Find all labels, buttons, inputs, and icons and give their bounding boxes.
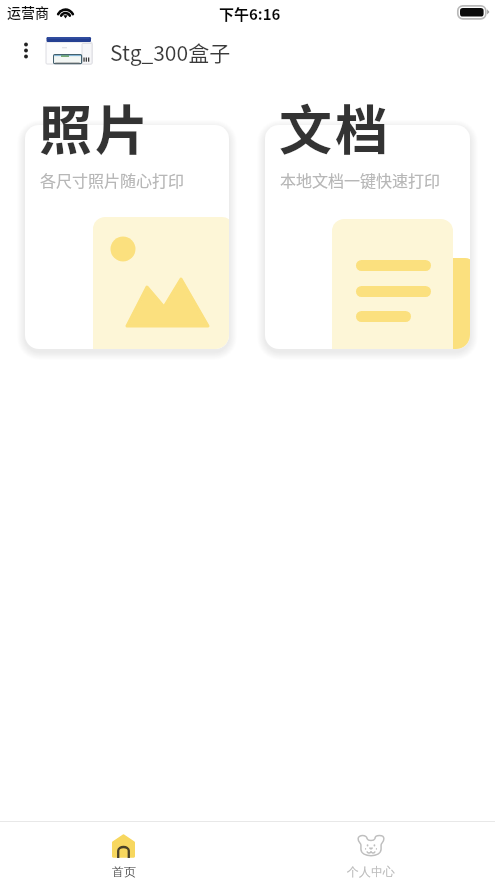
staticText: 首页 bbox=[112, 864, 136, 879]
staticText: Stg_300盒子 bbox=[110, 37, 231, 67]
button[interactable] bbox=[25, 125, 229, 349]
button[interactable]: 个人中心 bbox=[247, 822, 495, 881]
staticText: 各尺寸照片随心打印 bbox=[40, 168, 185, 191]
staticText: 本地文档一键快速打印 bbox=[280, 168, 441, 191]
staticText: 个人中心 bbox=[347, 864, 395, 879]
button[interactable]: 首页 bbox=[0, 822, 247, 881]
button[interactable] bbox=[265, 125, 470, 349]
staticText: 运营商 bbox=[7, 2, 49, 22]
staticText: 下午6:16 bbox=[219, 3, 281, 25]
staticText: 照片 bbox=[39, 89, 151, 166]
button[interactable]: More options bbox=[17, 36, 35, 64]
staticText: 文档 bbox=[279, 89, 391, 166]
